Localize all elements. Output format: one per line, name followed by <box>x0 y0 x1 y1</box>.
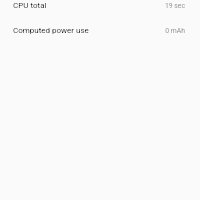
button[interactable]: CPU total <box>0 0 200 18</box>
button[interactable]: Computed power use <box>0 18 200 43</box>
staticText: Computed power use <box>13 26 89 35</box>
staticText: 19 sec <box>165 2 185 10</box>
staticText: CPU total <box>13 1 47 10</box>
staticText: 0 mAh <box>165 27 185 35</box>
